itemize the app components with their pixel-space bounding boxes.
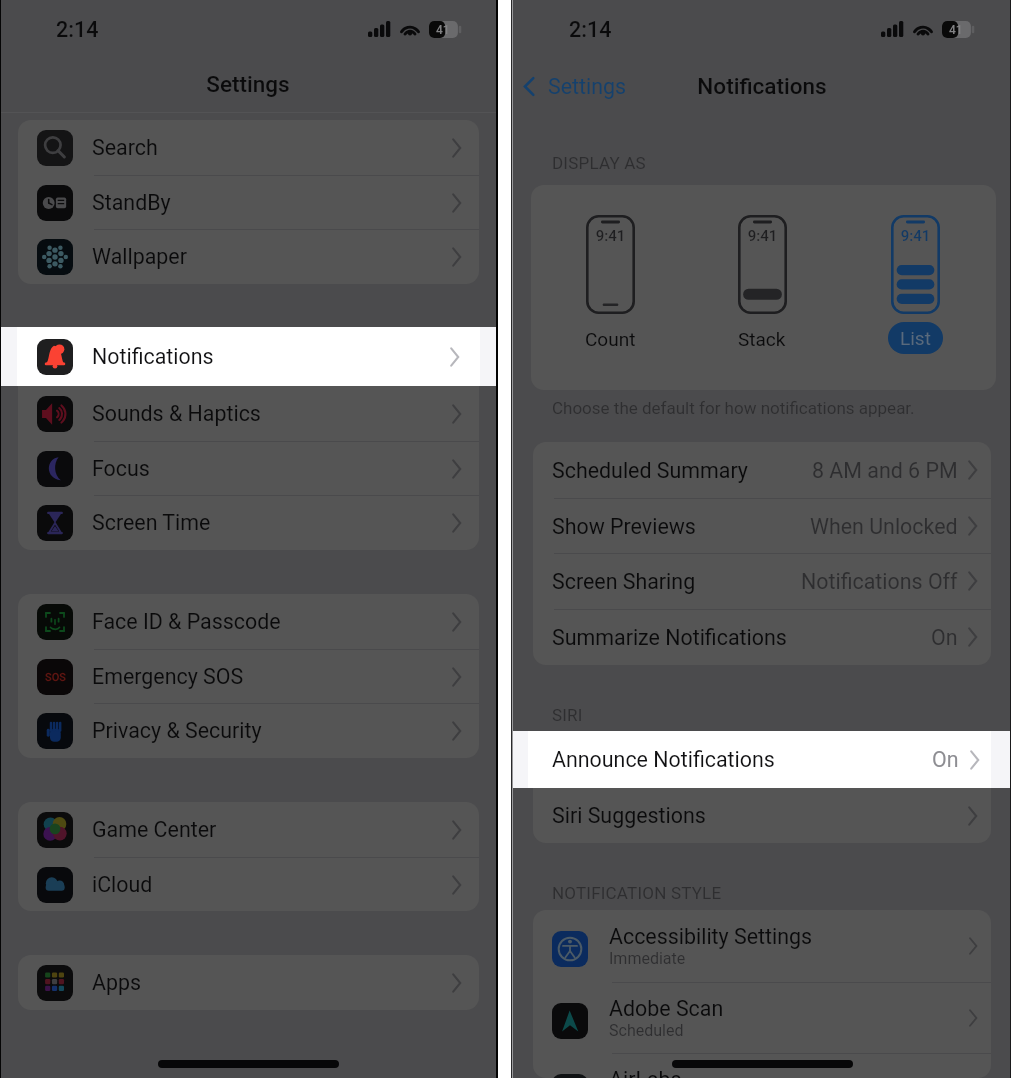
button[interactable]: Screen Time	[18, 495, 479, 550]
button[interactable]: Game Center	[18, 802, 479, 857]
button[interactable]: 9:41	[540, 215, 680, 350]
button[interactable]: Sounds & Haptics	[18, 386, 479, 441]
staticText: Accessibility Settings	[609, 924, 813, 949]
staticText: StandBy	[92, 190, 171, 215]
staticText: Search	[92, 135, 158, 160]
staticText: Game Center	[92, 817, 217, 842]
button[interactable]: SOS	[18, 649, 479, 704]
staticText: Screen Time	[92, 510, 211, 535]
staticText: Scheduled	[609, 1021, 684, 1040]
staticText: Wallpaper	[92, 244, 187, 269]
button[interactable]: Focus	[18, 441, 479, 496]
staticText: Face ID & Passcode	[92, 609, 281, 634]
staticText: Notifications	[513, 73, 1011, 99]
staticText: Scheduled Summary	[552, 458, 748, 483]
staticText: 9:41	[891, 227, 940, 245]
staticText: Announce Notifications	[552, 747, 775, 772]
button[interactable]: Back to Settings	[519, 71, 631, 102]
button[interactable]: StandBy	[18, 175, 479, 230]
button[interactable]: Search	[18, 120, 479, 175]
button[interactable]: iCloud	[18, 857, 479, 911]
staticText: SOS	[45, 671, 66, 684]
staticText: 2:14	[56, 17, 99, 42]
staticText: Focus	[92, 456, 150, 481]
staticText: Notifications Off	[801, 569, 958, 594]
staticText: Sounds & Haptics	[92, 401, 261, 426]
staticText: Siri Suggestions	[552, 803, 706, 828]
button[interactable]: Accessibility Settings	[533, 910, 991, 982]
staticText: 8 AM and 6 PM	[812, 458, 958, 483]
staticText: Apps	[92, 970, 142, 995]
staticText: 9:41	[738, 227, 787, 245]
staticText: DISPLAY AS	[552, 153, 646, 173]
staticText: Choose the default for how notifications…	[552, 398, 915, 418]
staticText: 9:41	[586, 227, 635, 245]
staticText: Stack	[738, 328, 786, 350]
button[interactable]: Wallpaper	[18, 229, 479, 284]
staticText: Summarize Notifications	[552, 625, 787, 650]
button[interactable]: Apps	[18, 955, 479, 1010]
staticText: Count	[585, 328, 636, 350]
staticText: 2:14	[569, 17, 612, 42]
staticText: Screen Sharing	[552, 569, 696, 594]
staticText: 41	[949, 23, 963, 37]
staticText: iCloud	[92, 872, 153, 897]
button[interactable]: Adobe Scan	[533, 982, 991, 1054]
button[interactable]: Screen Sharing	[533, 553, 991, 609]
button[interactable]: Announce Notifications	[513, 731, 1011, 788]
button[interactable]: Notifications	[0, 327, 496, 386]
staticText: Notifications	[92, 344, 214, 369]
staticText: Immediate	[609, 949, 686, 968]
staticText: Settings	[0, 71, 496, 97]
staticText: NOTIFICATION STYLE	[552, 883, 722, 903]
staticText: Show Previews	[552, 514, 696, 539]
button[interactable]: Show Previews	[533, 498, 991, 554]
button[interactable]: 9:41	[692, 215, 832, 350]
button[interactable]: Face ID & Passcode	[18, 594, 479, 649]
staticText: Privacy & Security	[92, 718, 262, 743]
button[interactable]: Siri Suggestions	[533, 788, 991, 843]
button[interactable]: 9:41	[845, 215, 985, 354]
button[interactable]: Summarize Notifications	[533, 609, 991, 665]
staticText: SIRI	[552, 705, 583, 725]
staticText: 41	[436, 23, 450, 37]
staticText: Adobe Scan	[609, 996, 724, 1021]
button[interactable]: AirLabs	[533, 1053, 991, 1078]
staticText: List	[900, 327, 931, 349]
staticText: Emergency SOS	[92, 664, 244, 689]
staticText: AirLabs	[609, 1067, 682, 1078]
button[interactable]: Privacy & Security	[18, 703, 479, 758]
staticText: On	[931, 625, 958, 650]
staticText: When Unlocked	[810, 514, 958, 539]
staticText: Settings	[548, 74, 627, 99]
button[interactable]: Scheduled Summary	[533, 442, 991, 498]
staticText: On	[932, 747, 959, 772]
